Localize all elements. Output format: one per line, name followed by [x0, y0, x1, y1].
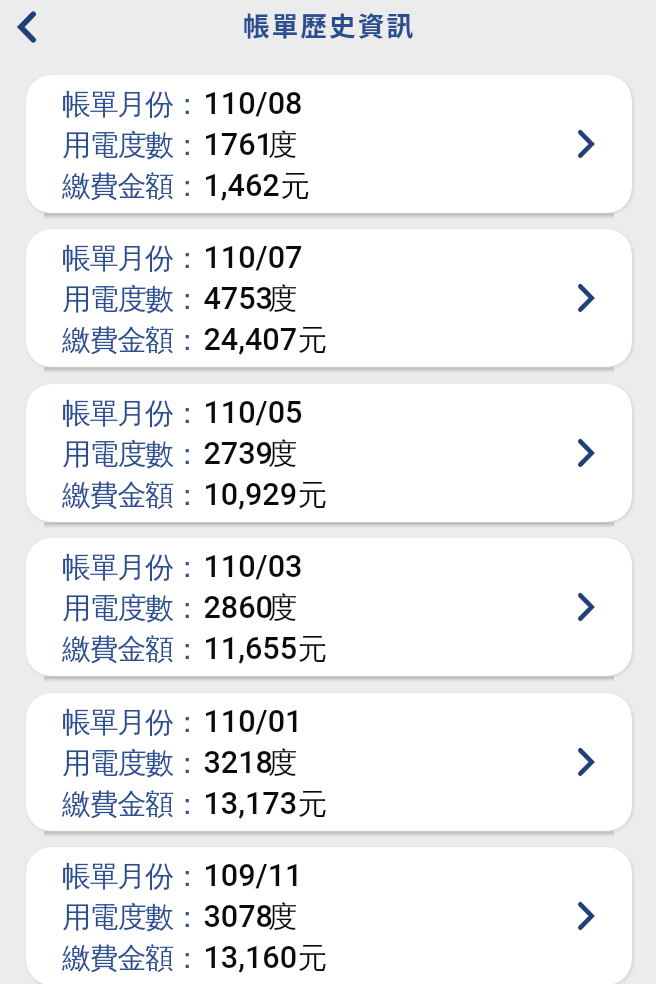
staticText: 帳單月份：110/01: [62, 704, 303, 741]
staticText: 帳單月份：110/03: [62, 549, 303, 586]
staticText: 用電度數：2739度: [62, 435, 298, 472]
button[interactable]: 帳單月份：109/11: [26, 847, 632, 984]
staticText: 用電度數：3218度: [62, 744, 298, 781]
staticText: 用電度數：3078度: [62, 898, 298, 935]
staticText: 繳費金額：10,929元: [62, 476, 328, 513]
button[interactable]: Back: [4, 4, 50, 50]
staticText: 用電度數：4753度: [62, 280, 298, 317]
staticText: 繳費金額：1,462元: [62, 167, 311, 204]
staticText: 帳單月份：109/11: [62, 858, 303, 895]
staticText: 繳費金額：13,160元: [62, 939, 328, 976]
button[interactable]: 帳單月份：110/08: [26, 75, 632, 213]
button[interactable]: 帳單月份：110/07: [26, 229, 632, 367]
staticText: 帳單歷史資訊: [243, 5, 416, 43]
button[interactable]: 帳單月份：110/03: [26, 538, 632, 676]
button[interactable]: 帳單月份：110/01: [26, 693, 632, 831]
staticText: 繳費金額：13,173元: [62, 785, 328, 822]
staticText: 用電度數：2860度: [62, 589, 298, 626]
staticText: 帳單月份：110/08: [62, 86, 303, 123]
button[interactable]: 帳單月份：110/05: [26, 384, 632, 522]
staticText: 繳費金額：24,407元: [62, 321, 328, 358]
staticText: 繳費金額：11,655元: [62, 630, 328, 667]
staticText: 帳單月份：110/05: [62, 395, 303, 432]
staticText: 帳單月份：110/07: [62, 240, 303, 277]
staticText: 用電度數：1761度: [62, 126, 298, 163]
